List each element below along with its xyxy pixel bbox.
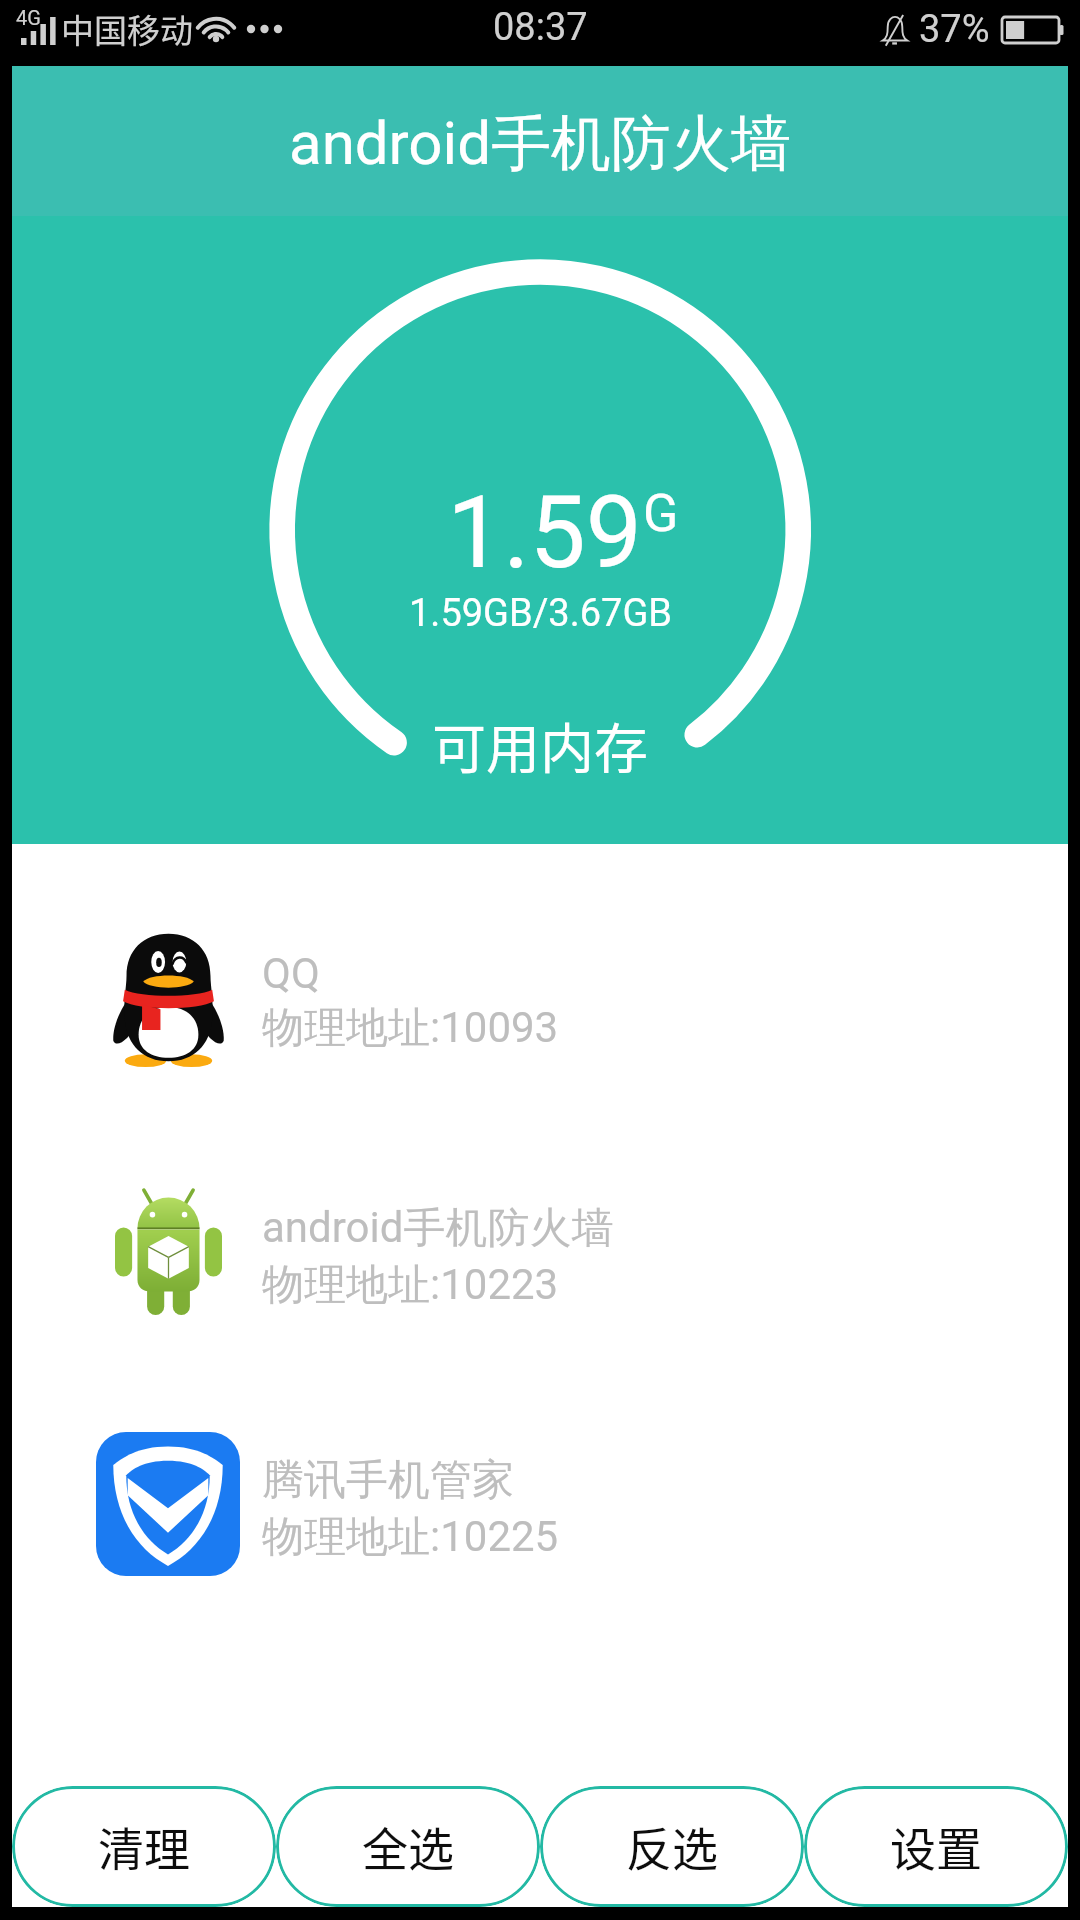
button[interactable]: 全选 (276, 1786, 540, 1907)
staticText: 物理地址:10223 (262, 1259, 559, 1312)
button[interactable]: 设置 (804, 1786, 1068, 1907)
button[interactable]: 反选 (540, 1786, 804, 1907)
staticText: 08:37 (493, 5, 588, 50)
staticText: 1.59GB/3.67GB (409, 591, 672, 636)
staticText: android手机防火墙 (262, 1202, 614, 1255)
staticText: 可用内存 (432, 706, 648, 784)
button[interactable]: 腾讯手机管家 (12, 1412, 1068, 1596)
staticText: 物理地址:10225 (262, 1511, 559, 1564)
staticText: 设置 (890, 1813, 982, 1880)
staticText: 1.59 (447, 474, 642, 591)
staticText: QQ (262, 949, 320, 998)
staticText: G (643, 483, 679, 544)
button[interactable]: QQ (12, 907, 1068, 1091)
staticText: 腾讯手机管家 (262, 1454, 514, 1507)
button[interactable]: 清理 (12, 1786, 276, 1907)
staticText: 物理地址:10093 (262, 1002, 559, 1055)
staticText: 全选 (362, 1813, 454, 1880)
staticText: 4G (16, 6, 41, 29)
staticText: android手机防火墙 (289, 106, 792, 182)
button[interactable]: android手机防火墙 (12, 1160, 1068, 1344)
staticText: 反选 (626, 1813, 718, 1880)
staticText: 37% (919, 7, 990, 52)
staticText: 中国移动 (61, 5, 193, 53)
staticText: 清理 (98, 1813, 190, 1880)
